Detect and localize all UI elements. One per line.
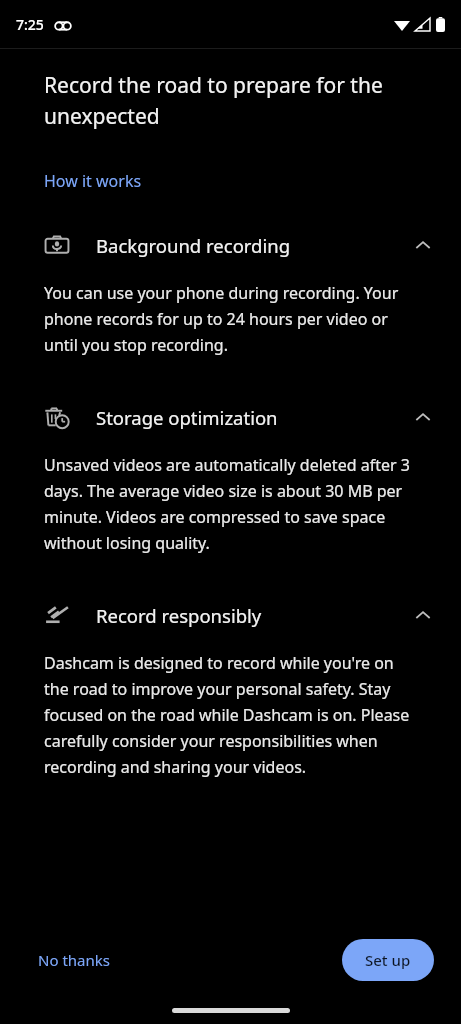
other: Collapse Background recording [411,233,435,257]
staticText: Record the road to prepare for the unexp… [44,71,401,130]
staticText: Background recording [96,233,411,258]
button[interactable]: How it works [44,168,142,194]
button[interactable]: Set up [342,939,434,981]
staticText: Storage optimization [96,405,411,430]
button[interactable]: No thanks [30,942,118,978]
other: Collapse Record responsibly [411,603,435,627]
staticText: Unsaved videos are automatically deleted… [44,454,417,554]
staticText: You can use your phone during recording.… [44,282,417,356]
staticText: Dashcam is designed to record while you'… [44,652,417,778]
staticText: No thanks [38,950,110,970]
staticText: How it works [44,170,142,192]
button[interactable]: Background recording [0,228,461,262]
staticText: 7:25 [16,15,44,34]
button[interactable]: Storage optimization [0,400,461,434]
other: Collapse Storage optimization [411,405,435,429]
staticText: Set up [365,950,411,970]
staticText: Record responsibly [96,603,411,628]
button[interactable]: Record responsibly [0,598,461,632]
